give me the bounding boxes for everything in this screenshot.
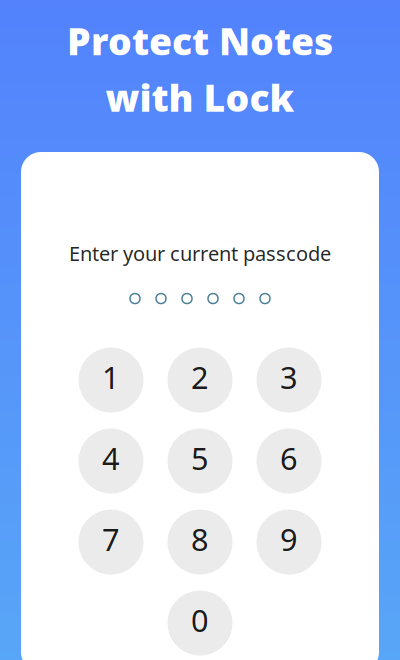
button[interactable]: 9 bbox=[256, 510, 321, 575]
staticText: 6 bbox=[280, 438, 298, 478]
staticText: 4 bbox=[102, 438, 120, 478]
staticText: 7 bbox=[102, 519, 120, 559]
staticText: 2 bbox=[191, 357, 209, 397]
staticText: 3 bbox=[280, 357, 298, 397]
button[interactable]: 3 bbox=[256, 348, 321, 413]
button[interactable]: 1 bbox=[78, 348, 143, 413]
staticText: 8 bbox=[191, 519, 209, 559]
button[interactable]: 7 bbox=[78, 510, 143, 575]
button[interactable]: 8 bbox=[167, 510, 232, 575]
button[interactable]: 4 bbox=[78, 429, 143, 494]
button[interactable]: 5 bbox=[167, 429, 232, 494]
staticText: 5 bbox=[191, 438, 209, 478]
button[interactable]: 2 bbox=[167, 348, 232, 413]
staticText: 1 bbox=[102, 357, 120, 397]
staticText: with Lock bbox=[105, 73, 294, 122]
staticText: Protect Notes bbox=[67, 16, 333, 66]
button[interactable]: 6 bbox=[256, 429, 321, 494]
button[interactable]: 0 bbox=[167, 591, 232, 656]
staticText: 9 bbox=[280, 519, 298, 559]
staticText: 0 bbox=[191, 600, 209, 640]
staticText: Enter your current passcode bbox=[69, 240, 331, 267]
